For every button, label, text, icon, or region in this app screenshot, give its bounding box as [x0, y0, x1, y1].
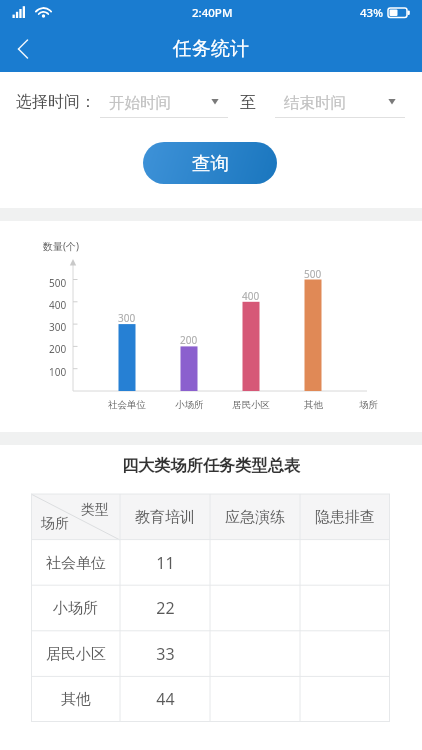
staticText: 居民小区	[46, 645, 106, 664]
button[interactable]: 类型	[31, 494, 120, 540]
staticText: 至	[240, 93, 256, 113]
staticText: 选择时间：	[16, 92, 96, 112]
staticText: 小场所	[53, 599, 98, 618]
button[interactable]: 小场所	[31, 585, 120, 631]
staticText: 11	[156, 552, 175, 574]
button[interactable]: 社会单位	[31, 540, 120, 586]
button[interactable]: 隐患排查	[300, 494, 390, 540]
staticText: 400	[49, 298, 67, 312]
staticText: 300	[118, 311, 136, 325]
staticText: 44	[156, 688, 175, 710]
staticText: 隐患排查	[315, 508, 375, 527]
staticText: 22	[156, 597, 175, 619]
staticText: 场所	[41, 515, 69, 533]
staticText: 数量(个)	[43, 239, 79, 253]
staticText: 社会单位	[46, 554, 106, 573]
staticText: 43%	[360, 5, 383, 21]
staticText: 其他	[61, 690, 91, 709]
staticText: 类型	[81, 501, 109, 519]
button[interactable]: 居民小区	[31, 631, 120, 677]
staticText: 2:40PM	[192, 5, 233, 21]
staticText: 200	[180, 333, 198, 347]
staticText: 教育培训	[135, 508, 195, 527]
staticText: 33	[156, 643, 175, 665]
staticText: 查询	[192, 152, 229, 175]
button[interactable]: 22	[120, 585, 210, 631]
button[interactable]: Back	[0, 26, 46, 72]
staticText: 400	[242, 289, 260, 303]
staticText: 结束时间	[284, 93, 346, 113]
staticText: 100	[49, 365, 67, 379]
button[interactable]: 应急演练	[210, 494, 300, 540]
staticText: 300	[49, 320, 67, 334]
button[interactable]: 11	[120, 540, 210, 586]
button[interactable]: 开始时间	[100, 90, 228, 118]
staticText: 任务统计	[173, 37, 249, 61]
staticText: 500	[49, 276, 67, 290]
button[interactable]: 其他	[31, 676, 120, 722]
button[interactable]: 44	[120, 676, 210, 722]
button[interactable]: 33	[120, 631, 210, 677]
staticText: 四大类场所任务类型总表	[0, 455, 422, 475]
staticText: 场所	[359, 399, 378, 411]
staticText: 500	[304, 267, 322, 281]
staticText: 200	[49, 342, 67, 356]
button[interactable]: 教育培训	[120, 494, 210, 540]
staticText: 小场所	[175, 399, 204, 411]
staticText: 应急演练	[225, 508, 285, 527]
staticText: 开始时间	[109, 93, 171, 113]
staticText: 居民小区	[232, 399, 270, 411]
staticText: 社会单位	[108, 399, 146, 411]
button[interactable]: 结束时间	[275, 90, 405, 118]
staticText: 其他	[304, 399, 323, 411]
button[interactable]: 查询	[143, 142, 277, 184]
